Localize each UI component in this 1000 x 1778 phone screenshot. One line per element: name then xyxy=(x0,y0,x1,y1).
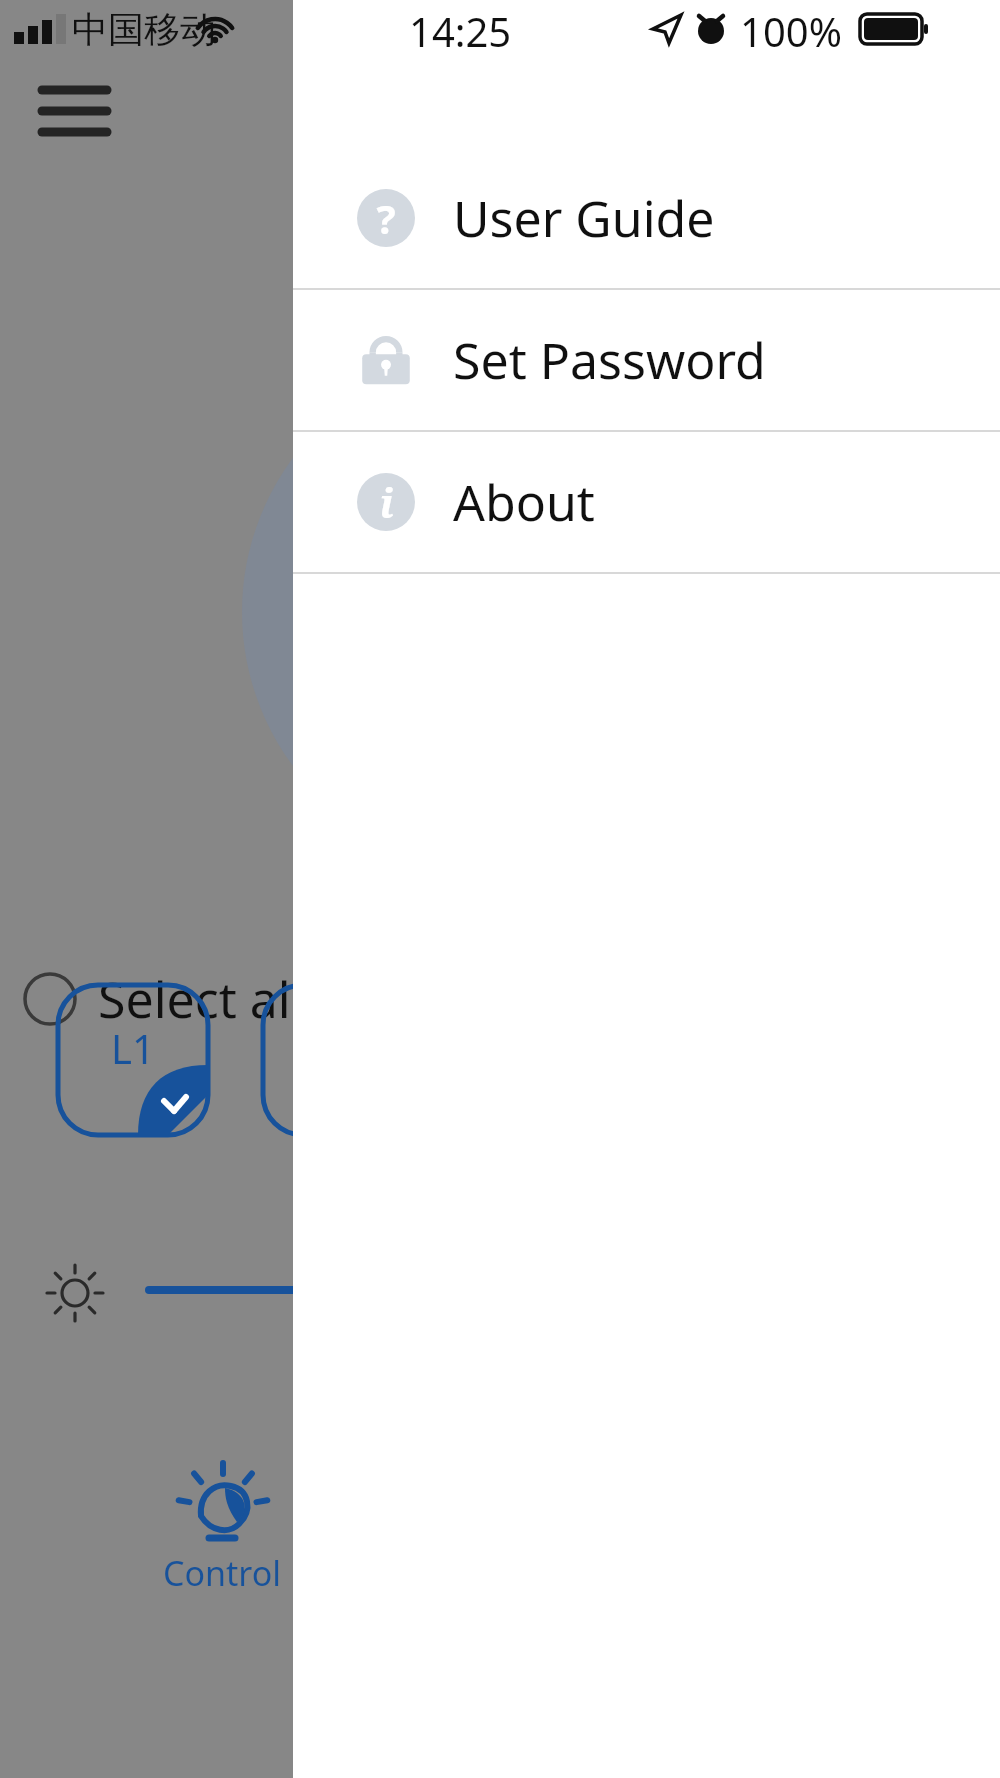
staticText: About xyxy=(453,468,595,536)
button[interactable]: i xyxy=(293,432,1000,572)
button[interactable]: Control xyxy=(150,1470,295,1596)
staticText: 100% xyxy=(740,4,842,58)
staticText: Select all xyxy=(98,965,304,1033)
button[interactable]: L1 xyxy=(58,985,208,1135)
button[interactable]: Select all xyxy=(20,960,340,1038)
staticText: Control xyxy=(163,1550,282,1596)
staticText: L1 xyxy=(111,1021,155,1075)
button[interactable]: Menu xyxy=(20,62,130,142)
staticText: User Guide xyxy=(453,184,715,252)
staticText: 14:25 xyxy=(409,4,512,58)
staticText: 中国移动 xyxy=(72,7,216,52)
staticText: ? xyxy=(376,191,396,245)
button[interactable]: Set Password xyxy=(293,290,1000,430)
button[interactable]: ? xyxy=(293,148,1000,288)
staticText: i xyxy=(379,475,394,529)
staticText: Set Password xyxy=(453,326,766,394)
